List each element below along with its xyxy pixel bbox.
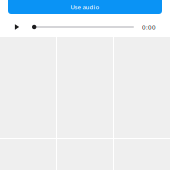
staticText: 0:00 — [142, 23, 156, 31]
button[interactable]: Play — [14, 20, 20, 34]
button[interactable]: Use audio — [8, 0, 162, 14]
staticText: Use audio — [70, 3, 99, 11]
